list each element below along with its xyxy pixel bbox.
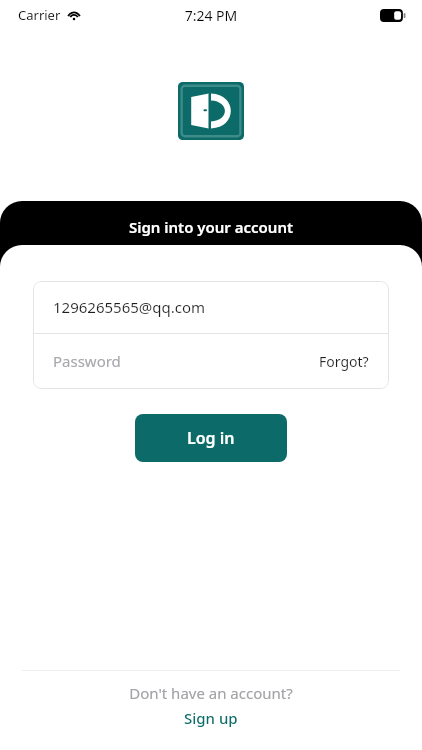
button[interactable]: Sign up	[176, 706, 246, 730]
staticText: Sign up	[184, 708, 238, 728]
button[interactable]: Forgot?	[319, 352, 369, 371]
staticText: Log in	[187, 427, 235, 449]
staticText: Sign into your account	[0, 217, 422, 237]
staticText: 7:24 PM	[0, 6, 422, 25]
button[interactable]: Log in	[135, 414, 287, 462]
staticText: 1296265565@qq.com	[53, 297, 206, 317]
staticText: Don't have an account?	[0, 683, 422, 703]
staticText: Forgot?	[319, 352, 369, 371]
staticText: Password	[53, 351, 121, 371]
button[interactable]: 1296265565@qq.com	[33, 281, 389, 333]
staticText: Carrier	[18, 6, 61, 24]
button[interactable]: Password	[33, 334, 389, 388]
